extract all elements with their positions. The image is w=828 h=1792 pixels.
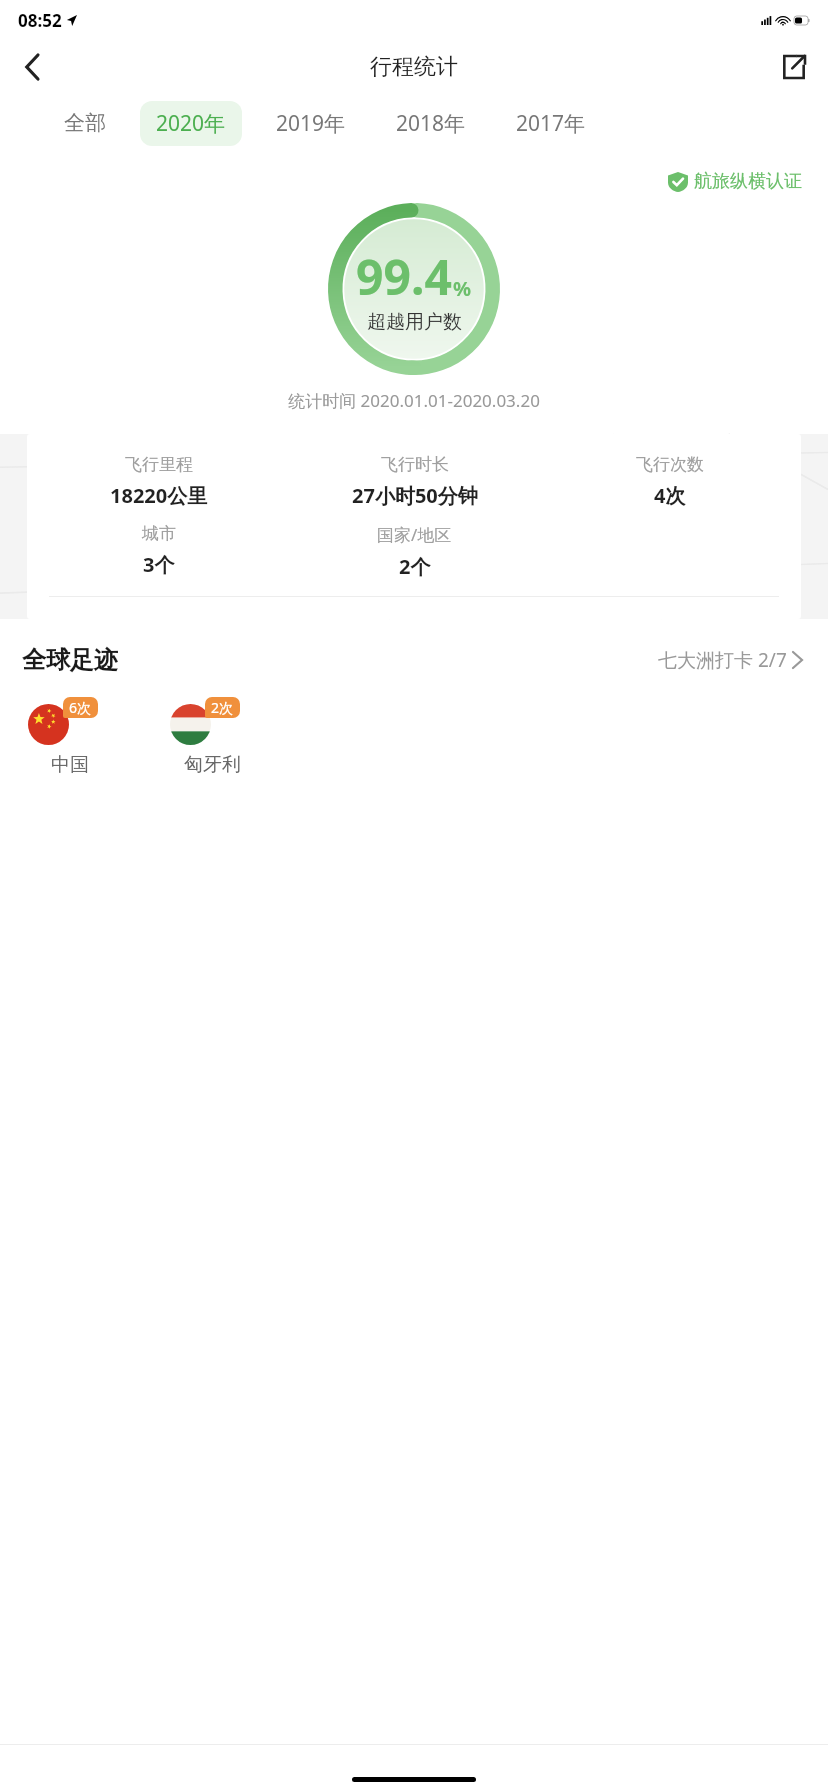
staticText: 中国 bbox=[51, 753, 89, 777]
staticText: 18220公里 bbox=[110, 482, 208, 509]
staticText: 2020年 bbox=[156, 109, 226, 138]
staticText: 27小时50分钟 bbox=[352, 482, 478, 509]
staticText: 4次 bbox=[654, 482, 686, 509]
button[interactable]: 2020年 bbox=[140, 101, 242, 146]
staticText: 七大洲打卡 2/7 bbox=[658, 647, 787, 673]
staticText: 3个 bbox=[143, 551, 175, 578]
button[interactable]: 2017年 bbox=[500, 101, 602, 146]
staticText: 2个 bbox=[399, 553, 431, 580]
staticText: 飞行里程 bbox=[125, 454, 193, 475]
button[interactable]: 七大洲打卡 2/7 bbox=[654, 643, 806, 677]
button[interactable]: 全部 bbox=[48, 102, 122, 144]
staticText: 99.4 bbox=[356, 244, 452, 309]
staticText: 匈牙利 bbox=[184, 753, 241, 777]
staticText: 2次 bbox=[211, 698, 234, 717]
staticText: 航旅纵横认证 bbox=[694, 170, 802, 193]
staticText: % bbox=[453, 275, 472, 302]
staticText: 飞行次数 bbox=[636, 454, 704, 475]
staticText: 国家/地区 bbox=[377, 523, 452, 546]
button[interactable]: 2019年 bbox=[260, 101, 362, 146]
button[interactable]: Share bbox=[768, 41, 820, 93]
button[interactable]: 2次 bbox=[167, 697, 257, 777]
staticText: 2017年 bbox=[516, 109, 586, 138]
staticText: 全部 bbox=[64, 110, 106, 136]
staticText: 行程统计 bbox=[370, 53, 458, 81]
button[interactable]: 2018年 bbox=[380, 101, 482, 146]
staticText: 统计时间 2020.01.01-2020.03.20 bbox=[0, 389, 828, 412]
staticText: 飞行时长 bbox=[381, 454, 449, 475]
button[interactable]: 6次 bbox=[25, 697, 115, 777]
button[interactable]: Back bbox=[6, 41, 58, 93]
staticText: 城市 bbox=[142, 523, 176, 544]
staticText: 超越用户数 bbox=[367, 310, 462, 334]
staticText: 08:52 bbox=[18, 9, 62, 32]
staticText: 2018年 bbox=[396, 109, 466, 138]
staticText: 2019年 bbox=[276, 109, 346, 138]
button[interactable]: 航旅纵横认证 bbox=[664, 166, 806, 197]
staticText: 6次 bbox=[69, 698, 92, 717]
staticText: 全球足迹 bbox=[22, 645, 118, 675]
button[interactable]: 飞行里程 bbox=[27, 434, 801, 619]
